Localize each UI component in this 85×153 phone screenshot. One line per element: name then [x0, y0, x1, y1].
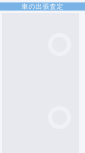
- staticText: 車の出張査定: [21, 2, 63, 11]
